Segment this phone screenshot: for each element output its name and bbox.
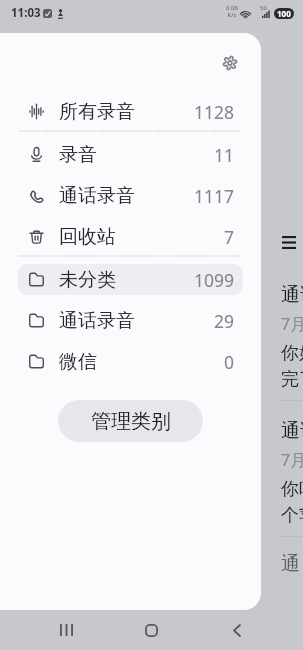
button[interactable]: Settings (213, 46, 247, 80)
staticText: 1117 (194, 184, 235, 208)
staticText: 回收站 (59, 225, 224, 249)
staticText: 所有录音 (59, 100, 194, 124)
button[interactable]: 通话录音 (18, 305, 243, 336)
button[interactable]: 录音 (18, 139, 243, 170)
staticText: 1099 (194, 268, 235, 292)
button[interactable]: 所有录音 (18, 96, 243, 127)
button[interactable]: 回收站 (18, 221, 243, 252)
staticText: 7月2 (281, 449, 303, 471)
staticText: 0.06 (224, 4, 240, 12)
staticText: 29 (214, 309, 235, 333)
staticText: 通话录音 (281, 419, 303, 443)
staticText: 100 (277, 8, 291, 19)
staticText: 7月2 (281, 313, 303, 335)
button[interactable]: 管理类别 (58, 400, 203, 442)
staticText: 录音 (59, 143, 214, 167)
button[interactable]: 微信 (18, 346, 243, 377)
staticText: 你吗 (281, 478, 303, 501)
staticText: 7 (224, 225, 235, 249)
staticText: 你好 (281, 342, 303, 365)
staticText: 完了 (281, 368, 303, 391)
staticText: 微信 (59, 350, 224, 374)
staticText: 个苹 (281, 504, 303, 527)
staticText: 通话录音 (281, 283, 303, 307)
button[interactable]: 通话录音 (18, 180, 243, 211)
staticText: 通 (281, 552, 300, 576)
staticText: 1128 (194, 100, 235, 124)
button[interactable]: 未分类 (18, 264, 243, 295)
staticText: 管理类别 (91, 409, 171, 434)
button[interactable]: Recents (44, 610, 88, 650)
button[interactable]: Home (129, 610, 173, 650)
staticText: 通话录音 (59, 184, 194, 208)
staticText: 0 (224, 350, 235, 374)
staticText: 未分类 (59, 268, 194, 292)
staticText: 11 (214, 143, 235, 167)
staticText: K/s (224, 11, 240, 19)
staticText: 通话录音 (59, 309, 214, 333)
staticText: 11:03 (11, 5, 41, 21)
staticText: 50 (260, 4, 267, 12)
button[interactable]: Back (215, 610, 259, 650)
